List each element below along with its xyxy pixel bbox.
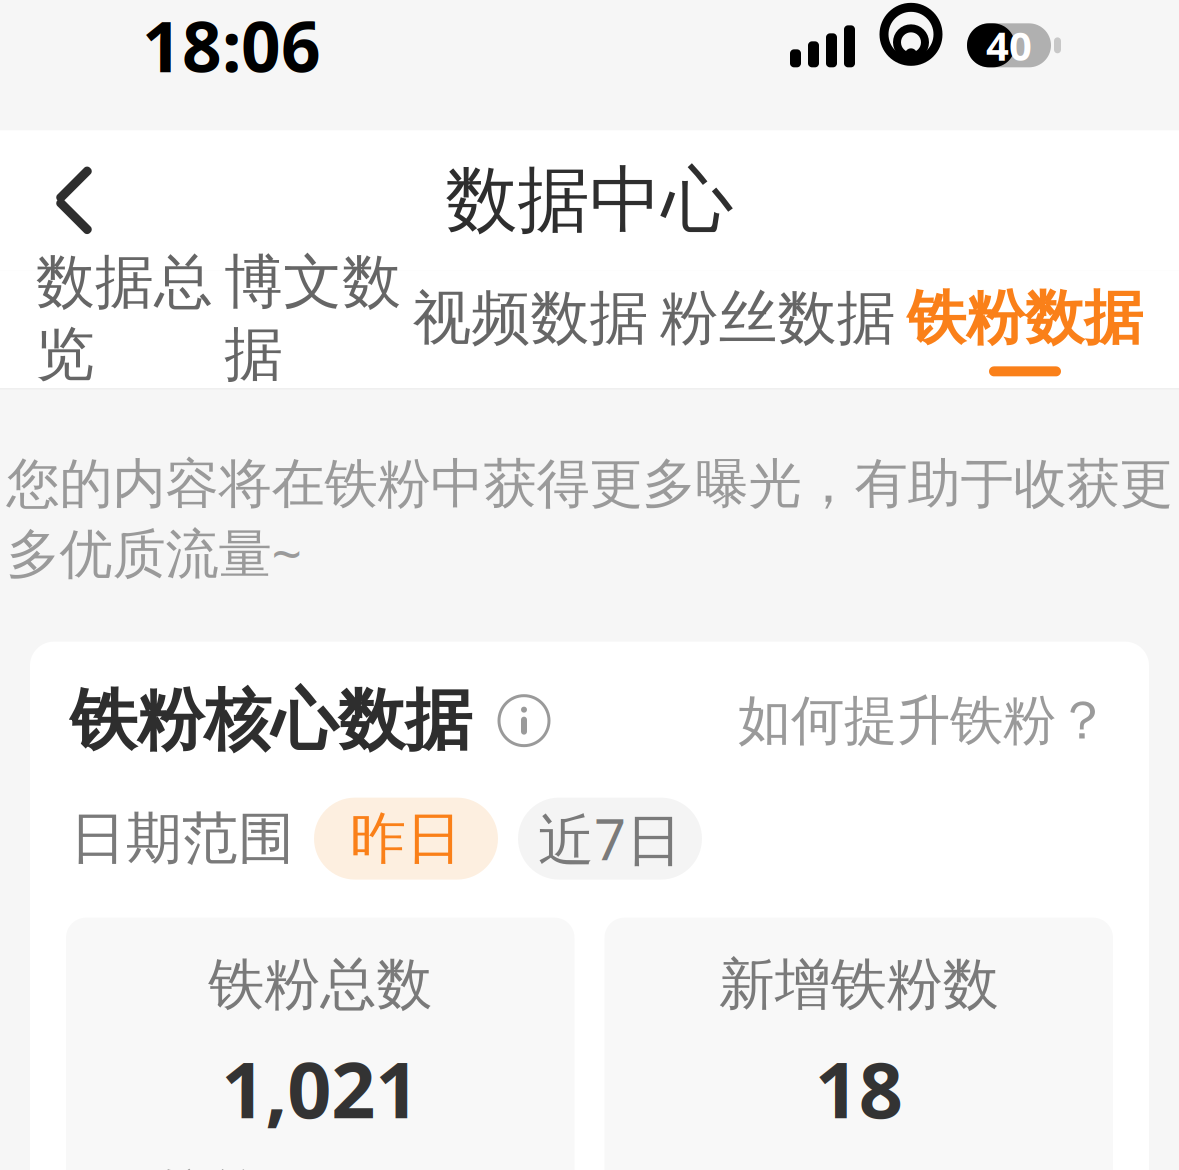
button[interactable]: 铁粉总数 (66, 918, 574, 1170)
button[interactable]: 近7日 (518, 798, 702, 880)
button[interactable]: 博文数据 (224, 240, 401, 418)
staticText: 视频数据 (412, 282, 648, 354)
button[interactable]: 数据总览 (36, 240, 213, 418)
staticText: 近7日 (538, 801, 682, 876)
staticText: 如何提升铁粉？ (738, 688, 1109, 753)
staticText: 较前日 (158, 1162, 311, 1170)
staticText: 日期范围 (70, 804, 294, 873)
staticText: 新增铁粉数 (719, 950, 999, 1019)
button[interactable]: 说明 (472, 689, 556, 753)
staticText: 1,021 (221, 1037, 419, 1140)
staticText: 铁粉总数 (208, 950, 432, 1019)
staticText: 铁粉数据 (907, 282, 1143, 354)
button[interactable]: 视频数据 (412, 276, 648, 382)
staticText: 粉丝数据 (660, 282, 896, 354)
button[interactable]: 返回 (20, 146, 128, 254)
staticText: 您的内容将在铁粉中获得更多曝光，有助于收获更多优质流量~ (6, 451, 1172, 588)
button[interactable]: 铁粉数据 (907, 276, 1143, 382)
staticText: 昨日 (350, 804, 462, 873)
staticText: 18:06 (142, 0, 321, 91)
staticText: 18 (815, 1037, 903, 1140)
staticText: 40 (986, 19, 1032, 72)
staticText: 数据总览 (36, 246, 213, 390)
button[interactable]: 粉丝数据 (660, 276, 896, 382)
button[interactable]: 昨日 (314, 798, 498, 880)
button[interactable]: 如何提升铁粉？ (738, 682, 1109, 759)
staticText: 数据中心 (445, 156, 733, 244)
button[interactable]: 新增铁粉数 (604, 918, 1113, 1170)
staticText: 博文数据 (224, 246, 401, 390)
staticText: 铁粉核心数据 (70, 680, 472, 762)
